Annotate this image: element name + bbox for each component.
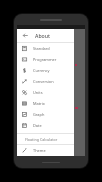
- staticText: Graph: [33, 112, 45, 117]
- button[interactable]: Programmer: [17, 54, 74, 65]
- button[interactable]: Graph: [17, 109, 74, 120]
- staticText: Programmer: [33, 57, 57, 62]
- staticText: Conversion: [33, 79, 54, 84]
- button[interactable]: Date: [17, 120, 74, 131]
- button[interactable]: Back: [21, 31, 30, 40]
- button[interactable]: Units: [17, 87, 74, 98]
- button[interactable]: Conversion: [17, 76, 74, 87]
- staticText: Currency: [33, 68, 50, 73]
- button[interactable]: Theme: [17, 145, 74, 156]
- staticText: Units: [33, 90, 43, 95]
- staticText: Date: [33, 123, 42, 128]
- button[interactable]: Matrix: [17, 98, 74, 109]
- button[interactable]: Standard: [17, 43, 74, 54]
- staticText: About: [35, 32, 51, 39]
- staticText: Standard: [33, 46, 50, 51]
- button[interactable]: Currency: [17, 65, 74, 76]
- staticText: Theme: [33, 148, 46, 153]
- staticText: Floating Calculator: [25, 137, 58, 142]
- button[interactable]: Back: [17, 29, 74, 42]
- staticText: Matrix: [33, 101, 45, 106]
